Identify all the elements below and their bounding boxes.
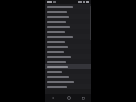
other: List item 3 <box>47 16 69 18</box>
button[interactable]: Home <box>61 94 76 102</box>
other: List item 17 <box>47 86 67 88</box>
other: List item 8 <box>47 41 65 43</box>
button[interactable]: Recent apps <box>76 94 91 102</box>
button[interactable]: List item 6 <box>45 29 91 34</box>
other: List item 11 <box>47 56 71 58</box>
button[interactable]: List item 12 <box>45 59 91 64</box>
button[interactable]: List item 16 <box>45 79 91 84</box>
other: List item 12 <box>47 61 66 63</box>
button[interactable]: List item 4 <box>45 19 91 24</box>
button[interactable]: List item 17 <box>45 84 91 89</box>
other: List item 10 <box>47 51 64 53</box>
button[interactable]: Back <box>45 94 61 102</box>
button[interactable]: List item 10 <box>45 49 91 54</box>
other: List item 5 <box>47 26 70 28</box>
button[interactable]: List item 1 <box>45 4 91 9</box>
other: List item 16 <box>47 81 74 83</box>
other: List item 13 <box>47 66 68 68</box>
other: List item 6 <box>47 31 65 33</box>
button[interactable]: List item 13 <box>45 64 91 69</box>
button[interactable]: List item 7 <box>45 34 91 39</box>
button[interactable]: List item 8 <box>45 39 91 44</box>
button[interactable]: List item 2 <box>45 9 91 14</box>
button[interactable]: List item 3 <box>45 14 91 19</box>
button[interactable]: List item 14 <box>45 69 91 74</box>
other: List item 14 <box>47 71 62 73</box>
button[interactable]: List item 5 <box>45 24 91 29</box>
other: List item 9 <box>47 46 68 48</box>
other: List item 1 <box>47 6 73 8</box>
button[interactable]: List item 15 <box>45 74 91 79</box>
button[interactable]: List item 9 <box>45 44 91 49</box>
other: List item 2 <box>47 11 67 13</box>
other: List item 15 <box>47 76 69 78</box>
other: List item 7 <box>47 36 73 38</box>
other: List item 4 <box>47 21 66 23</box>
button[interactable]: List item 11 <box>45 54 91 59</box>
